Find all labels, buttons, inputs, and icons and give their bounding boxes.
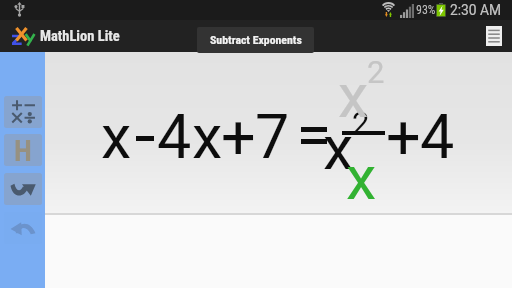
button[interactable]: Arithmetic operations xyxy=(4,96,42,128)
button[interactable]: Redo xyxy=(4,173,42,205)
staticText: x xyxy=(346,142,377,213)
staticText: Subtract Exponents xyxy=(210,33,302,47)
button[interactable]: History xyxy=(4,134,42,166)
staticText: 2:30 AM xyxy=(450,2,502,18)
staticText: 4 xyxy=(420,101,455,172)
button[interactable]: Subtract Exponents xyxy=(197,27,314,53)
staticText: x xyxy=(323,112,354,183)
staticText: x xyxy=(101,101,132,172)
staticText: 2 xyxy=(352,105,370,141)
button[interactable]: Undo xyxy=(4,212,42,244)
staticText: x xyxy=(192,101,223,172)
staticText: MathLion Lite xyxy=(40,28,120,45)
staticText: 7 xyxy=(255,101,290,172)
staticText: + xyxy=(221,101,256,172)
button[interactable]: Show steps xyxy=(476,20,512,52)
staticText: + xyxy=(386,101,421,172)
staticText: 2 xyxy=(367,54,385,90)
staticText: x xyxy=(338,60,369,131)
staticText: 4 xyxy=(157,101,192,172)
staticText: 93% xyxy=(416,3,436,17)
staticText: H xyxy=(14,134,32,166)
